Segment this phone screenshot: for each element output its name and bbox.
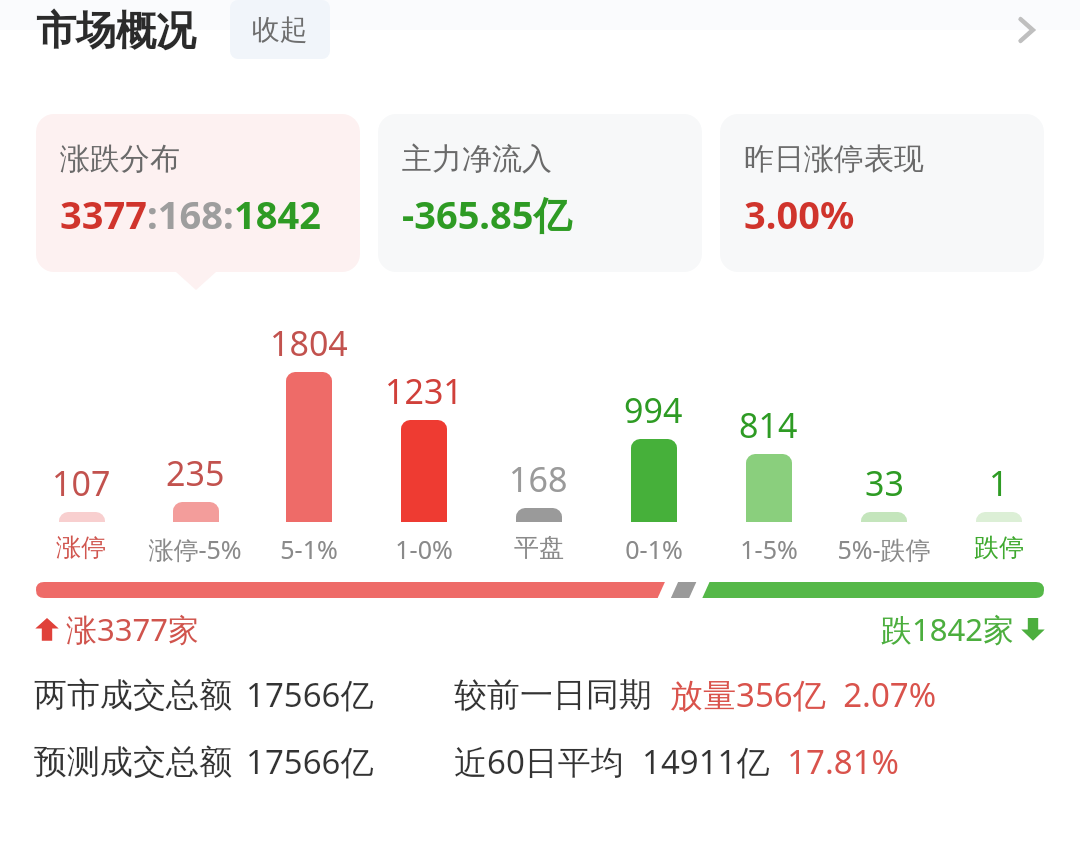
button[interactable]: 主力净流入 bbox=[378, 114, 702, 272]
staticText: 33 bbox=[865, 460, 904, 506]
staticText: :168: bbox=[147, 188, 234, 240]
staticText: 1 bbox=[989, 460, 1009, 506]
staticText: 3377 bbox=[60, 188, 147, 240]
staticText: 235 bbox=[166, 450, 225, 496]
staticText: 107 bbox=[52, 460, 111, 506]
staticText: 5-1% bbox=[280, 532, 338, 566]
staticText: 17566亿 bbox=[246, 672, 374, 717]
staticText: 0-1% bbox=[625, 532, 683, 566]
staticText: 1231 bbox=[385, 368, 463, 414]
staticText: -365.85亿 bbox=[402, 188, 572, 240]
staticText: 近60日平均 bbox=[454, 739, 624, 784]
staticText: 涨3377家 bbox=[66, 608, 199, 650]
other: Down bbox=[1020, 616, 1046, 642]
staticText: 1804 bbox=[270, 320, 348, 366]
staticText: 放量356亿 bbox=[670, 672, 826, 717]
staticText: 预测成交总额 bbox=[34, 741, 232, 783]
staticText: 3.00% bbox=[744, 188, 855, 240]
staticText: 昨日涨停表现 bbox=[744, 140, 924, 178]
staticText: 跌停 bbox=[974, 532, 1024, 563]
staticText: 1842 bbox=[234, 188, 321, 240]
staticText: 994 bbox=[624, 387, 683, 433]
staticText: 较前一日同期 bbox=[454, 674, 652, 716]
staticText: 主力净流入 bbox=[402, 140, 552, 178]
staticText: 涨跌分布 bbox=[60, 140, 180, 178]
staticText: 17566亿 bbox=[246, 739, 374, 784]
button[interactable]: 收起 bbox=[230, 0, 330, 59]
staticText: 5%-跌停 bbox=[837, 532, 931, 566]
staticText: 涨停 bbox=[56, 532, 106, 563]
staticText: 跌1842家 bbox=[881, 608, 1014, 650]
other: Up bbox=[34, 616, 60, 642]
button[interactable]: 涨跌分布 bbox=[36, 114, 360, 272]
staticText: 平盘 bbox=[514, 532, 564, 563]
button[interactable]: More bbox=[998, 2, 1054, 58]
staticText: 17.81% bbox=[770, 739, 899, 784]
staticText: 市场概况 bbox=[36, 5, 196, 55]
staticText: 收起 bbox=[252, 12, 308, 47]
staticText: 814 bbox=[739, 402, 798, 448]
staticText: 14911亿 bbox=[642, 739, 770, 784]
staticText: 2.07% bbox=[826, 672, 937, 717]
staticText: 涨停-5% bbox=[148, 532, 242, 566]
staticText: 1-5% bbox=[740, 532, 798, 566]
staticText: 168 bbox=[509, 456, 568, 502]
staticText: 两市成交总额 bbox=[34, 674, 232, 716]
button[interactable]: 昨日涨停表现 bbox=[720, 114, 1044, 272]
staticText: 1-0% bbox=[395, 532, 453, 566]
